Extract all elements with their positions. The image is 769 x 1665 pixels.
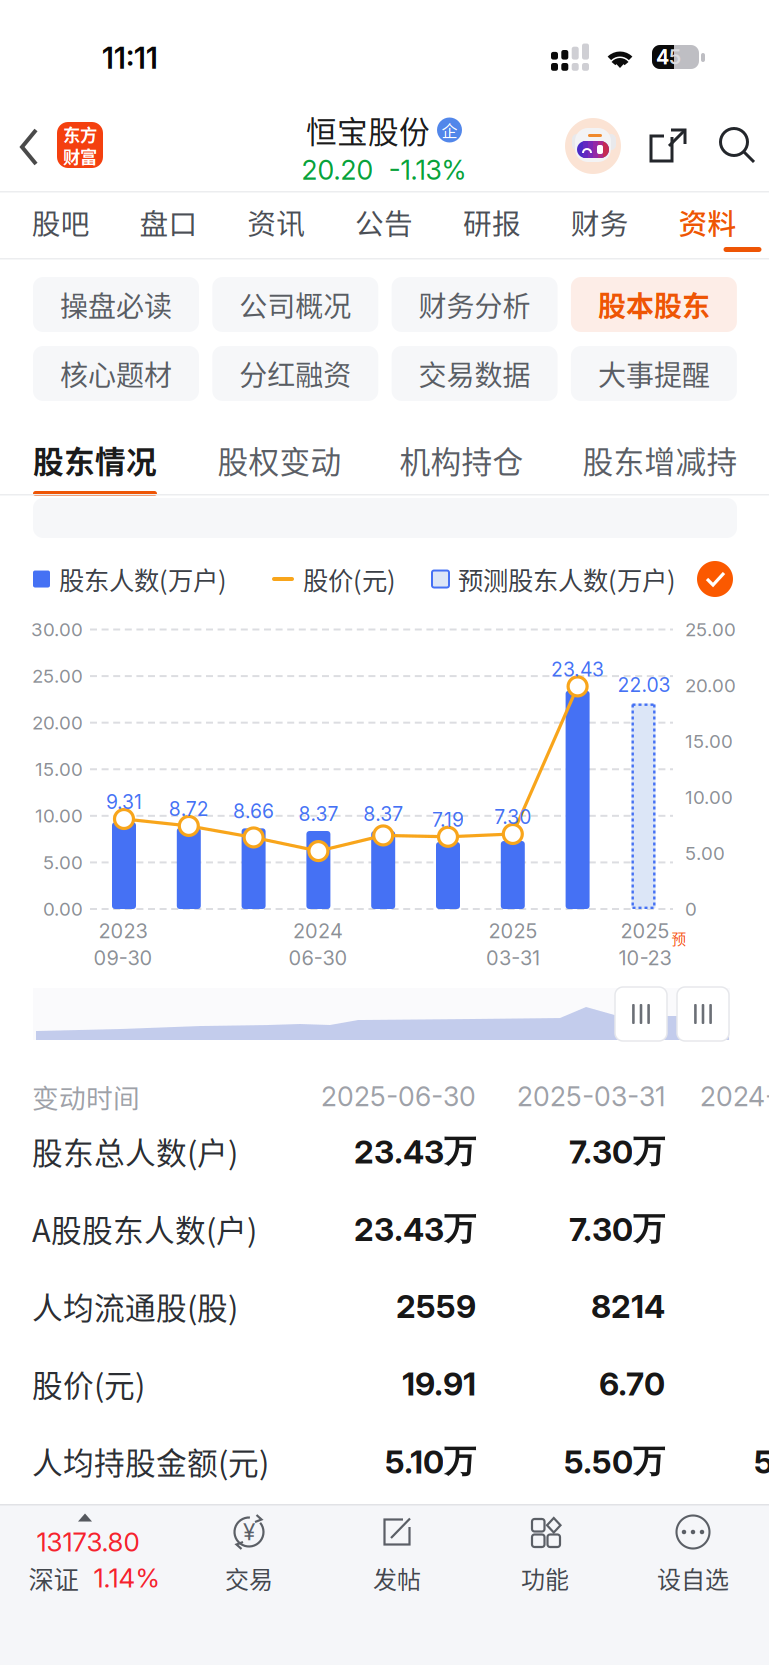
button[interactable]: 分享 xyxy=(647,125,689,167)
button[interactable]: 大事提醒 xyxy=(571,346,737,401)
staticText: 10.00 xyxy=(685,786,733,808)
button[interactable]: 财务分析 xyxy=(392,277,558,332)
button[interactable]: 调整时间范围 xyxy=(677,987,729,1041)
staticText: 03-31 xyxy=(486,946,540,970)
staticText: 8214 xyxy=(591,1287,665,1326)
staticText: 5.00 xyxy=(685,842,725,864)
button[interactable]: 盘口 xyxy=(114,192,222,258)
staticText: 8.72 xyxy=(169,797,209,821)
button[interactable]: 图例开关 xyxy=(697,561,733,597)
button[interactable]: 功能 xyxy=(471,1507,619,1611)
button[interactable]: 核心题材 xyxy=(33,346,199,401)
staticText: 20.00 xyxy=(32,711,83,734)
staticText: 5.50万 xyxy=(564,1441,665,1481)
button[interactable]: 公司概况 xyxy=(212,277,378,332)
staticText: 11:11 xyxy=(102,40,158,76)
staticText: 股价(元) xyxy=(303,561,396,597)
staticText: 13173.80 xyxy=(36,1526,139,1558)
staticText: 23.43 xyxy=(551,658,604,681)
button[interactable]: 资料 xyxy=(653,192,761,258)
button[interactable]: 股东增减持 xyxy=(582,436,738,498)
staticText: 6.70 xyxy=(599,1364,665,1403)
staticText: 股权变动 xyxy=(217,438,341,482)
staticText: 7.19 xyxy=(432,808,464,831)
staticText: 发帖 xyxy=(373,1561,421,1595)
staticText: 20.00 xyxy=(685,674,736,697)
staticText: 股东人数(万户) xyxy=(59,561,227,597)
staticText: A股股东人数(户) xyxy=(32,1206,257,1251)
staticText: 交易 xyxy=(225,1561,273,1595)
staticText: 8.66 xyxy=(233,800,274,823)
button[interactable]: 股权变动 xyxy=(217,436,342,498)
staticText: 30.00 xyxy=(31,618,83,641)
staticText: 45 xyxy=(656,45,681,69)
button[interactable]: 股吧 xyxy=(7,192,115,258)
staticText: 恒宝股份 xyxy=(306,108,430,152)
staticText: 09-30 xyxy=(93,946,152,970)
staticText: 2025 xyxy=(488,919,537,943)
staticText: 8.37 xyxy=(363,802,403,826)
staticText: 2024-09-30 xyxy=(700,1080,769,1113)
button[interactable]: 搜索 xyxy=(716,125,758,167)
button[interactable]: AI 助手 xyxy=(565,118,621,174)
staticText: 深证 xyxy=(28,1560,78,1596)
staticText: 0 xyxy=(685,898,697,920)
staticText: 06-30 xyxy=(288,946,347,970)
staticText: 研报 xyxy=(463,201,521,243)
staticText: 2559 xyxy=(396,1287,476,1326)
staticText: 大事提醒 xyxy=(598,353,710,394)
button[interactable]: 东方财富首页 xyxy=(57,122,103,168)
staticText: 盘口 xyxy=(139,201,197,243)
staticText: 25.00 xyxy=(685,618,736,641)
staticText: 10.00 xyxy=(35,804,83,827)
staticText: 23.43万 xyxy=(354,1131,476,1171)
staticText: 人均流通股(股) xyxy=(32,1284,238,1328)
button[interactable]: 公告 xyxy=(330,192,438,258)
staticText: -1.13% xyxy=(388,154,466,186)
button[interactable]: 机构持仓 xyxy=(399,436,524,498)
staticText: 10-23 xyxy=(618,946,671,970)
staticText: 分红融资 xyxy=(239,353,351,394)
staticText: 2025 xyxy=(620,919,669,943)
staticText: 交易数据 xyxy=(419,353,531,394)
staticText: 23.43万 xyxy=(354,1209,476,1249)
staticText: 5.00 xyxy=(43,851,83,874)
staticText: 2023 xyxy=(98,919,147,943)
button[interactable]: 股本股东 xyxy=(571,277,737,332)
staticText: 1.14% xyxy=(93,1562,159,1594)
button[interactable]: 返回 xyxy=(12,121,46,173)
staticText: 预测股东人数(万户) xyxy=(458,561,676,597)
staticText: 人均持股金额(元) xyxy=(32,1439,269,1483)
button[interactable]: 调整时间范围 xyxy=(615,987,667,1041)
staticText: 股价(元) xyxy=(32,1361,145,1406)
staticText: 预 xyxy=(671,927,686,949)
staticText: 操盘必读 xyxy=(60,284,172,325)
button[interactable]: ¥ xyxy=(175,1507,323,1611)
staticText: 0.00 xyxy=(43,898,83,920)
button[interactable]: 分红融资 xyxy=(212,346,378,401)
staticText: 2025-03-31 xyxy=(517,1080,665,1113)
staticText: 15.00 xyxy=(35,758,83,781)
staticText: 企 xyxy=(441,118,457,142)
staticText: 15.00 xyxy=(685,730,733,753)
button[interactable]: 财务 xyxy=(546,192,654,258)
button[interactable]: 股东情况 xyxy=(30,436,160,498)
staticText: 20.20 xyxy=(301,154,373,186)
staticText: 股东情况 xyxy=(33,438,157,482)
button[interactable]: 操盘必读 xyxy=(33,277,199,332)
staticText: 5.10万 xyxy=(385,1441,476,1481)
button[interactable]: 研报 xyxy=(438,192,546,258)
button[interactable]: 交易数据 xyxy=(392,346,558,401)
staticText: 变动时间 xyxy=(32,1077,140,1116)
button[interactable]: 发帖 xyxy=(323,1507,471,1611)
staticText: 股本股东 xyxy=(598,284,710,325)
staticText: 25.00 xyxy=(32,665,83,687)
staticText: 财务分析 xyxy=(419,284,531,325)
staticText: 公司概况 xyxy=(239,284,351,325)
staticText: 功能 xyxy=(521,1561,569,1595)
staticText: 股东增减持 xyxy=(582,438,737,482)
staticText: 机构持仓 xyxy=(399,438,523,482)
button[interactable]: 设自选 xyxy=(619,1507,767,1611)
button[interactable]: 深证指数 xyxy=(0,1507,175,1611)
button[interactable]: 资讯 xyxy=(222,192,330,258)
